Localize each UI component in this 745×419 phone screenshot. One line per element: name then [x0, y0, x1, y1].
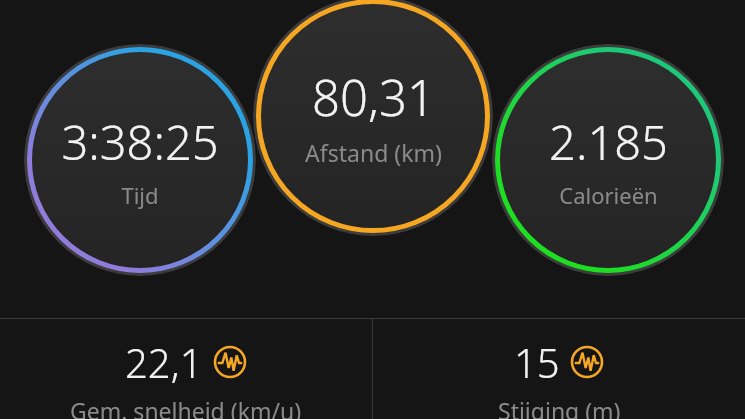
button[interactable]: 22,1: [0, 319, 372, 419]
staticText: 3:38:25: [61, 110, 219, 174]
button[interactable]: Calorieën 2.185: [492, 44, 724, 276]
staticText: Stijging (m): [498, 395, 621, 419]
button[interactable]: Afstand 80,31 km: [253, 0, 493, 236]
staticText: Calorieën: [559, 180, 658, 210]
staticText: 80,31: [312, 64, 435, 131]
staticText: 15: [514, 335, 560, 389]
button[interactable]: Tijd 3:38:25: [24, 44, 256, 276]
button[interactable]: 15: [373, 319, 745, 419]
staticText: 2.185: [549, 110, 668, 174]
staticText: Gem. snelheid (km/u): [70, 395, 302, 419]
staticText: Tijd: [121, 180, 159, 210]
staticText: Afstand (km): [305, 137, 442, 168]
staticText: 22,1: [125, 335, 203, 389]
